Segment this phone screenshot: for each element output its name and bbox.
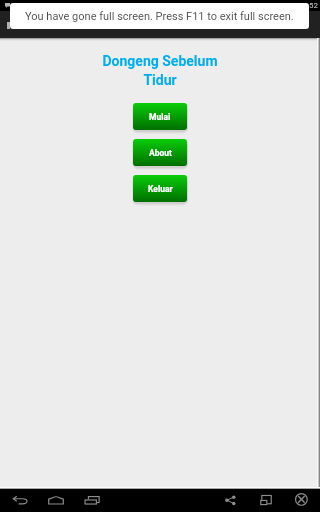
staticText: Tidur <box>143 72 177 88</box>
button[interactable]: Keluar <box>133 175 187 202</box>
button[interactable]: Screenshot <box>253 489 275 512</box>
staticText: Keluar <box>148 184 173 194</box>
staticText: About <box>149 148 172 158</box>
staticText: 52 <box>309 1 318 10</box>
button[interactable]: Share <box>218 489 240 512</box>
button[interactable]: Close <box>294 489 316 512</box>
staticText: You have gone full screen. Press F11 to … <box>25 10 294 23</box>
button[interactable]: Mulai <box>133 103 187 130</box>
button[interactable]: About <box>133 139 187 166</box>
button[interactable]: Home <box>40 489 62 512</box>
staticText: Dongeng Sebelum <box>102 53 218 69</box>
button[interactable]: Back <box>5 489 27 512</box>
button[interactable]: Recent apps <box>76 489 98 512</box>
staticText: Mulai <box>149 112 171 122</box>
